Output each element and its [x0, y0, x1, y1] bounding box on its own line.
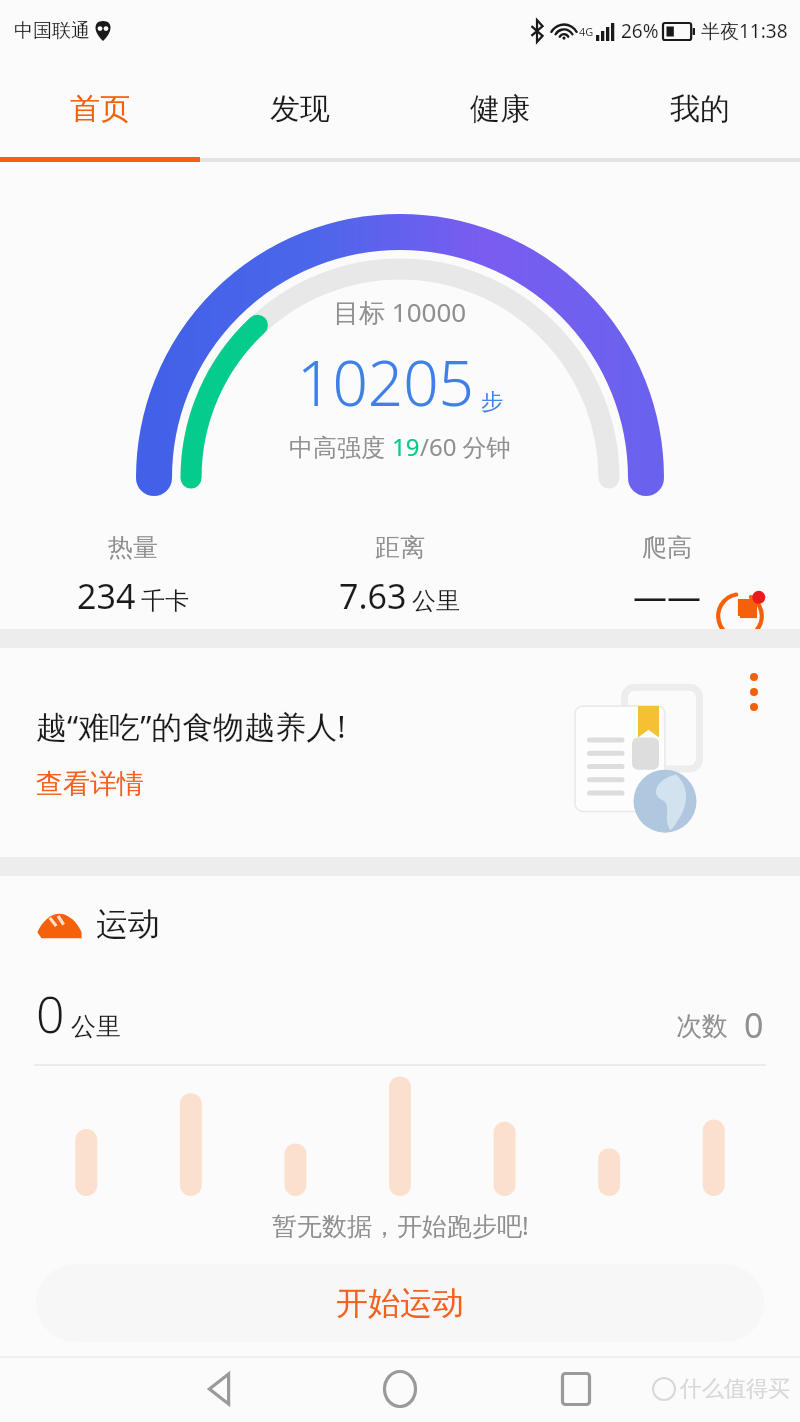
button[interactable]: 距离: [266, 532, 533, 619]
button[interactable]: 开始运动: [36, 1264, 764, 1342]
button[interactable]: 热量: [0, 532, 266, 619]
staticText: 26%: [621, 18, 659, 44]
staticText: 公里: [71, 1011, 121, 1042]
button[interactable]: 运动: [36, 904, 160, 944]
button[interactable]: 爬高: [533, 532, 800, 619]
button[interactable]: 更多: [732, 670, 776, 714]
button[interactable]: Back: [188, 1356, 256, 1422]
staticText: 半夜11:38: [701, 18, 788, 44]
staticText: 什么值得买: [680, 1375, 790, 1403]
staticText: 中高强度: [289, 430, 392, 463]
button[interactable]: 数据统计: [706, 582, 774, 650]
staticText: 4G: [579, 24, 594, 39]
staticText: 千卡: [141, 586, 189, 616]
staticText: 距离: [375, 532, 425, 563]
staticText: 查看详情: [36, 767, 144, 801]
staticText: 发现: [270, 90, 330, 128]
staticText: 次数: [676, 1010, 728, 1043]
staticText: 0: [36, 980, 65, 1048]
staticText: ——: [633, 573, 701, 619]
staticText: 公里: [412, 586, 460, 616]
staticText: 开始运动: [336, 1283, 464, 1323]
staticText: 步: [481, 388, 503, 416]
staticText: 234: [77, 573, 136, 619]
staticText: 我的: [670, 90, 730, 128]
staticText: 中国联通: [14, 19, 90, 43]
staticText: 目标 10000: [333, 294, 467, 330]
staticText: 10205: [297, 340, 475, 424]
button[interactable]: 发现: [200, 62, 400, 156]
button[interactable]: 健康: [400, 62, 600, 156]
staticText: 健康: [470, 90, 530, 128]
button[interactable]: Recents: [542, 1356, 610, 1422]
staticText: 爬高: [642, 532, 692, 563]
button[interactable]: Home: [366, 1356, 434, 1422]
staticText: 7.63: [339, 573, 407, 619]
button[interactable]: 越“难吃”的食物越养人!: [0, 648, 800, 857]
button[interactable]: 首页: [0, 62, 200, 156]
button[interactable]: 我的: [600, 62, 800, 156]
staticText: 热量: [108, 532, 158, 563]
staticText: 越“难吃”的食物越养人!: [36, 705, 346, 747]
button[interactable]: 查看详情: [36, 767, 144, 801]
staticText: /60 分钟: [420, 430, 511, 463]
staticText: 0: [744, 1002, 764, 1048]
staticText: 首页: [70, 90, 130, 128]
staticText: 运动: [96, 904, 160, 944]
staticText: 暂无数据，开始跑步吧!: [272, 1208, 529, 1242]
staticText: 19: [392, 430, 420, 463]
